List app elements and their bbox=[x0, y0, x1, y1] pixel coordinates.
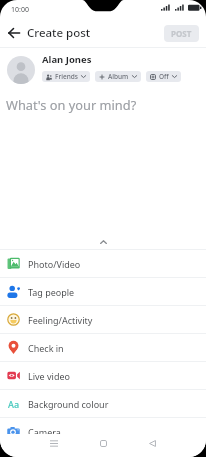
button[interactable]: Aa bbox=[0, 390, 206, 417]
button[interactable]: Home bbox=[94, 434, 112, 452]
staticText: Aa bbox=[8, 398, 20, 410]
staticText: Album bbox=[108, 72, 129, 81]
staticText: Background colour bbox=[28, 398, 109, 410]
staticText: Alan Jones bbox=[42, 53, 92, 66]
staticText: Feeling/Activity bbox=[28, 314, 93, 326]
staticText: Friends bbox=[55, 72, 78, 81]
staticText: Off bbox=[159, 72, 169, 81]
button[interactable]: Check in bbox=[0, 334, 206, 361]
staticText: POST bbox=[171, 28, 192, 39]
staticText: Create post bbox=[27, 25, 91, 41]
button[interactable]: Tag people bbox=[0, 278, 206, 305]
button[interactable]: Off bbox=[146, 71, 181, 82]
button[interactable]: Back bbox=[143, 434, 161, 452]
button[interactable]: Live video bbox=[0, 362, 206, 389]
button[interactable]: Feeling/Activity bbox=[0, 306, 206, 333]
staticText: Tag people bbox=[28, 286, 75, 298]
staticText: Live video bbox=[28, 370, 70, 382]
button[interactable]: Album bbox=[95, 71, 141, 82]
button[interactable]: Recents bbox=[45, 434, 63, 452]
button[interactable]: Camera bbox=[0, 418, 206, 445]
staticText: What's on your mind? bbox=[6, 96, 137, 113]
button[interactable]: Collapse bbox=[0, 235, 206, 249]
button[interactable]: POST bbox=[164, 25, 199, 42]
staticText: 10:00 bbox=[11, 5, 29, 15]
staticText: Check in bbox=[28, 342, 64, 354]
button[interactable]: Friends bbox=[42, 71, 90, 82]
staticText: Photo/Video bbox=[28, 258, 81, 270]
button[interactable]: Back bbox=[5, 24, 23, 42]
staticText: Camera bbox=[28, 426, 61, 438]
button[interactable]: Photo/Video bbox=[0, 250, 206, 277]
